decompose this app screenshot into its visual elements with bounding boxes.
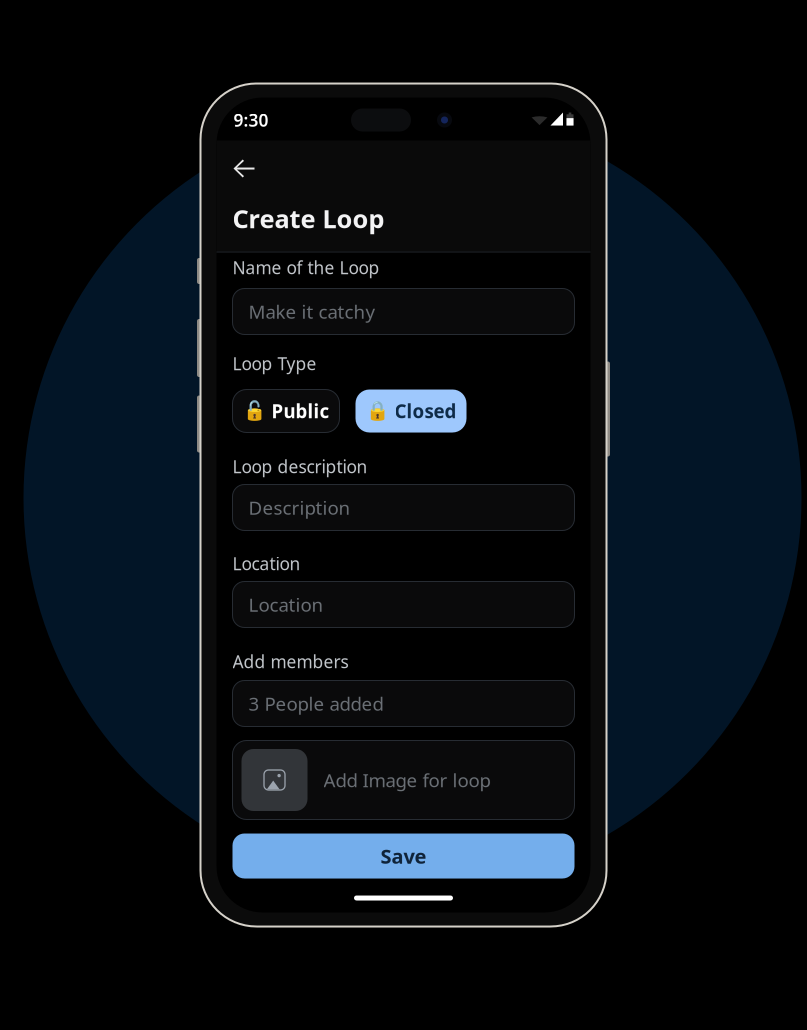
staticText: Loop Type [232, 352, 316, 375]
staticText: Add members [232, 650, 348, 673]
staticText: 3 People added [248, 691, 383, 716]
staticText: Create Loop [232, 201, 384, 235]
button[interactable]: Location [232, 581, 574, 627]
button[interactable]: Back [232, 159, 272, 193]
button[interactable]: Save [232, 833, 574, 878]
staticText: Add Image for loop [323, 768, 490, 792]
staticText: Public [271, 399, 329, 423]
staticText: Name of the Loop [232, 256, 379, 279]
button[interactable]: 🔒 [355, 389, 466, 432]
button[interactable]: Add Image for loop [232, 740, 574, 819]
staticText: 🔒 [365, 400, 388, 422]
staticText: Location [232, 552, 300, 575]
staticText: Save [380, 843, 426, 869]
button[interactable]: Description [232, 484, 574, 530]
staticText: Location [248, 592, 323, 617]
button[interactable]: Make it catchy [232, 288, 574, 334]
staticText: 9:30 [233, 108, 268, 131]
staticText: Make it catchy [248, 299, 375, 324]
staticText: 🔓 [242, 400, 265, 422]
staticText: Loop description [232, 455, 367, 478]
staticText: Description [248, 495, 350, 520]
button[interactable]: 3 People added [232, 680, 574, 726]
button[interactable]: 🔓 [232, 389, 339, 432]
staticText: Closed [394, 399, 456, 423]
